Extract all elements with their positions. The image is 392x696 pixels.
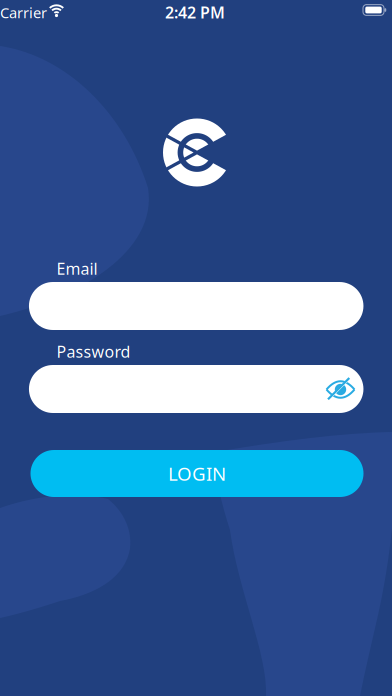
- button[interactable]: LOGIN: [30, 450, 363, 497]
- button[interactable]: Email: [29, 282, 363, 330]
- staticText: LOGIN: [168, 461, 226, 486]
- button[interactable]: Show password: [324, 377, 356, 401]
- staticText: Password: [56, 341, 130, 362]
- button[interactable]: Password: [29, 365, 363, 413]
- staticText: Carrier: [0, 3, 47, 22]
- staticText: 2:42 PM: [165, 2, 225, 23]
- staticText: Email: [56, 258, 97, 279]
